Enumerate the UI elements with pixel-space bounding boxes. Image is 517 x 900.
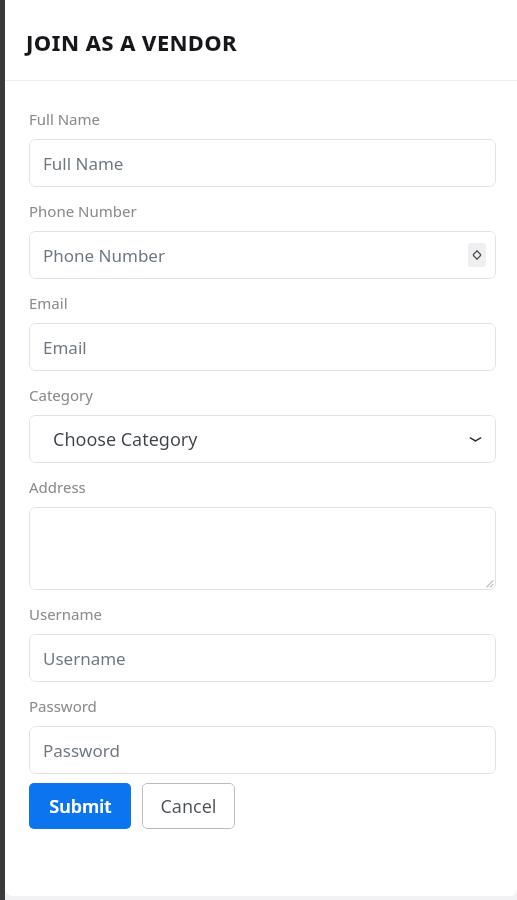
staticText: Full Name bbox=[43, 152, 124, 175]
staticText: Submit bbox=[49, 794, 112, 819]
staticText: Phone Number bbox=[43, 244, 165, 267]
staticText: Address bbox=[29, 477, 86, 497]
button[interactable]: Increase or decrease number bbox=[468, 243, 486, 267]
staticText: Full Name bbox=[29, 109, 100, 129]
button[interactable]: Full Name bbox=[29, 139, 496, 187]
staticText: Password bbox=[29, 696, 97, 716]
button[interactable]: Submit bbox=[29, 783, 131, 829]
button[interactable]: Password bbox=[29, 726, 496, 774]
staticText: Username bbox=[29, 604, 102, 624]
staticText: Category bbox=[29, 385, 93, 405]
button[interactable]: Email bbox=[29, 323, 496, 371]
staticText: Phone Number bbox=[29, 201, 137, 221]
button[interactable]: Address bbox=[29, 507, 496, 590]
staticText: Email bbox=[29, 293, 68, 313]
staticText: Choose Category bbox=[53, 427, 198, 452]
staticText: Email bbox=[43, 336, 87, 359]
button[interactable]: Username bbox=[29, 634, 496, 682]
button[interactable]: Phone Number bbox=[29, 231, 496, 279]
staticText: Cancel bbox=[160, 794, 217, 819]
button[interactable]: Choose Category bbox=[29, 415, 496, 463]
button[interactable]: Cancel bbox=[142, 783, 235, 829]
staticText: Password bbox=[43, 739, 120, 762]
staticText: Username bbox=[43, 647, 126, 670]
staticText: JOIN AS A VENDOR bbox=[26, 27, 237, 57]
